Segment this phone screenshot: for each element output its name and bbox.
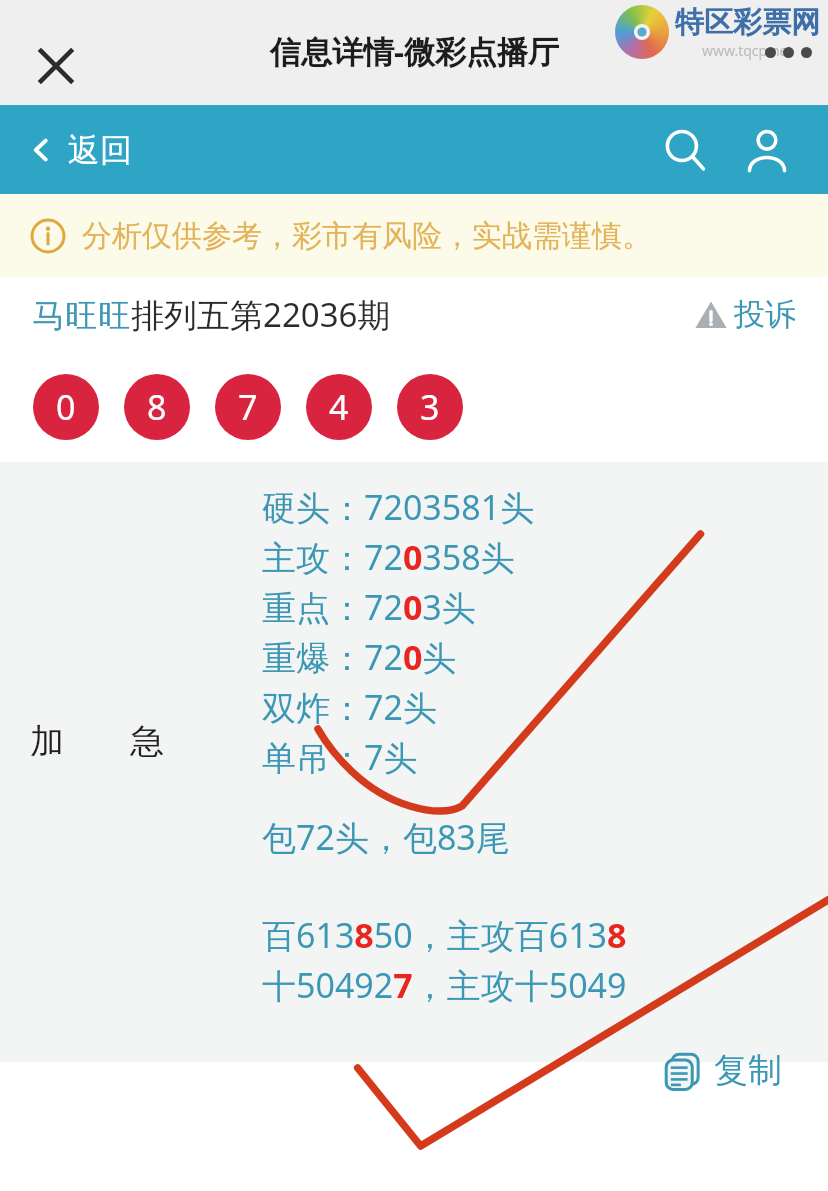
staticText: 重爆：720头	[262, 634, 457, 684]
button[interactable]: 返回	[0, 120, 146, 180]
staticText: 急	[130, 720, 164, 763]
staticText: 双炸：72头	[262, 684, 437, 734]
staticText: 3	[420, 384, 440, 430]
staticText: 返回	[68, 130, 132, 170]
staticText: 十504927，主攻十5049	[262, 962, 627, 1012]
button[interactable]: More options	[761, 43, 816, 62]
staticText: 分析仅供参考，彩市有风险，实战需谨慎。	[82, 217, 652, 255]
staticText: 投诉	[734, 295, 796, 334]
staticText: 7	[238, 384, 258, 430]
staticText: 加	[30, 720, 64, 763]
staticText: 百613850，主攻百6138	[262, 912, 627, 962]
staticText: 0	[56, 384, 76, 430]
staticText: 硬头：7203581头	[262, 484, 535, 534]
button[interactable]: 复制	[654, 1041, 790, 1100]
button[interactable]: Profile	[736, 119, 798, 181]
staticText: 信息详情-微彩点播厅	[270, 30, 559, 72]
staticText: 特区彩票网	[675, 4, 820, 41]
button[interactable]: Close	[30, 40, 82, 92]
staticText: 马旺旺排列五第22036期	[32, 292, 391, 337]
staticText: 单吊：7头	[262, 734, 418, 784]
staticText: 4	[329, 384, 349, 430]
staticText: 8	[147, 384, 167, 430]
button[interactable]: Search	[654, 119, 716, 181]
button[interactable]: 投诉	[684, 289, 828, 340]
staticText: 复制	[714, 1049, 782, 1092]
staticText: 重点：7203头	[262, 584, 476, 634]
staticText: 主攻：720358头	[262, 534, 515, 584]
staticText: www.tqcp.net	[702, 41, 793, 60]
staticText: 包72头，包83尾	[262, 814, 510, 864]
